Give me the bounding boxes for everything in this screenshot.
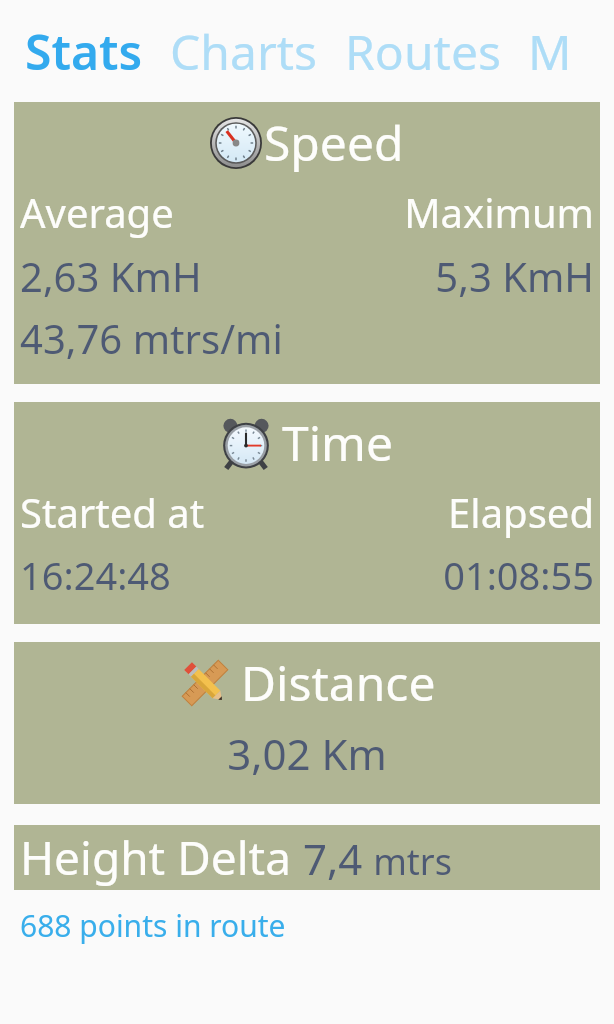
staticText: Elapsed — [307, 485, 594, 539]
staticText: 2,63 KmH — [20, 249, 307, 303]
button[interactable]: Distance — [14, 642, 600, 804]
staticText: 43,76 mtrs/mi — [20, 311, 594, 365]
staticText: Charts — [170, 19, 318, 84]
staticText: Started at — [20, 485, 307, 539]
staticText: Maximum — [307, 185, 594, 239]
button[interactable]: Speed — [14, 102, 600, 384]
staticText: 16:24:48 — [20, 549, 307, 601]
button[interactable]: M — [528, 19, 572, 84]
other: Speed — [210, 117, 262, 169]
staticText: 3,02 Km — [20, 725, 594, 782]
other: Time — [220, 417, 272, 469]
button[interactable]: Time — [14, 402, 600, 624]
staticText: 01:08:55 — [307, 549, 594, 601]
staticText: Distance — [241, 650, 436, 715]
button[interactable]: Charts — [170, 19, 318, 84]
button[interactable]: Routes — [345, 19, 501, 84]
staticText: Time — [282, 410, 394, 475]
staticText: Average — [20, 185, 307, 239]
staticText: Height Delta 7,4 mtrs — [20, 826, 452, 889]
staticText: M — [528, 19, 572, 84]
staticText: Stats — [25, 19, 143, 84]
staticText: 5,3 KmH — [307, 249, 594, 303]
button[interactable]: 688 points in route — [14, 902, 600, 948]
button[interactable]: Stats — [25, 19, 143, 84]
staticText: Routes — [345, 19, 501, 84]
staticText: Speed — [264, 110, 404, 175]
staticText: 688 points in route — [20, 905, 286, 946]
button[interactable]: Height Delta 7,4 mtrs — [14, 825, 600, 890]
other: Distance — [179, 657, 231, 709]
